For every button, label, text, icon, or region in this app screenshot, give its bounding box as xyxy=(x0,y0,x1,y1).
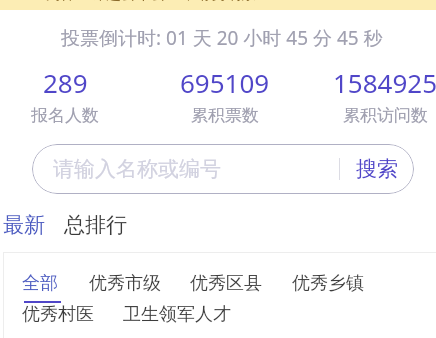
staticText: 289 xyxy=(43,65,88,100)
staticText: 投票倒计时: 01 天 20 小时 45 分 45 秒 xyxy=(61,25,383,51)
staticText: 优秀区县 xyxy=(190,272,262,295)
staticText: 优秀市级 xyxy=(89,272,161,295)
button[interactable]: 优秀乡镇 xyxy=(292,272,364,295)
button[interactable]: 优秀市级 xyxy=(89,272,161,295)
button[interactable]: 最新 xyxy=(3,212,45,238)
button[interactable]: 总排行 xyxy=(64,212,127,238)
button[interactable]: 卫生领军人才 xyxy=(123,303,231,326)
staticText: 为保证评选公平公正，请勿刷票 xyxy=(46,0,256,4)
staticText: 全部 xyxy=(22,272,58,295)
button[interactable]: 289 xyxy=(0,65,145,126)
staticText: 最新 xyxy=(3,212,45,238)
button[interactable]: 1584925 xyxy=(305,65,436,126)
staticText: 搜索 xyxy=(356,156,398,182)
staticText: 695109 xyxy=(180,65,270,100)
staticText: 1584925 xyxy=(333,65,436,100)
button[interactable]: 优秀村医 xyxy=(22,303,94,326)
staticText: 卫生领军人才 xyxy=(123,303,231,326)
staticText: 总排行 xyxy=(64,212,127,238)
button[interactable]: 全部 xyxy=(22,272,58,295)
button[interactable]: 优秀区县 xyxy=(190,272,262,295)
staticText: 累积票数 xyxy=(191,105,259,126)
staticText: 优秀村医 xyxy=(22,303,94,326)
staticText: 报名人数 xyxy=(31,105,99,126)
button[interactable]: 695109 xyxy=(145,65,305,126)
staticText: 优秀乡镇 xyxy=(292,272,364,295)
staticText: 请输入名称或编号 xyxy=(53,156,221,182)
button[interactable]: 搜索 xyxy=(340,144,414,194)
staticText: 累积访问数 xyxy=(343,105,428,126)
button[interactable]: 请输入名称或编号 xyxy=(32,144,339,194)
button[interactable]: 为保证评选公平公正，请勿刷票 xyxy=(0,0,436,10)
